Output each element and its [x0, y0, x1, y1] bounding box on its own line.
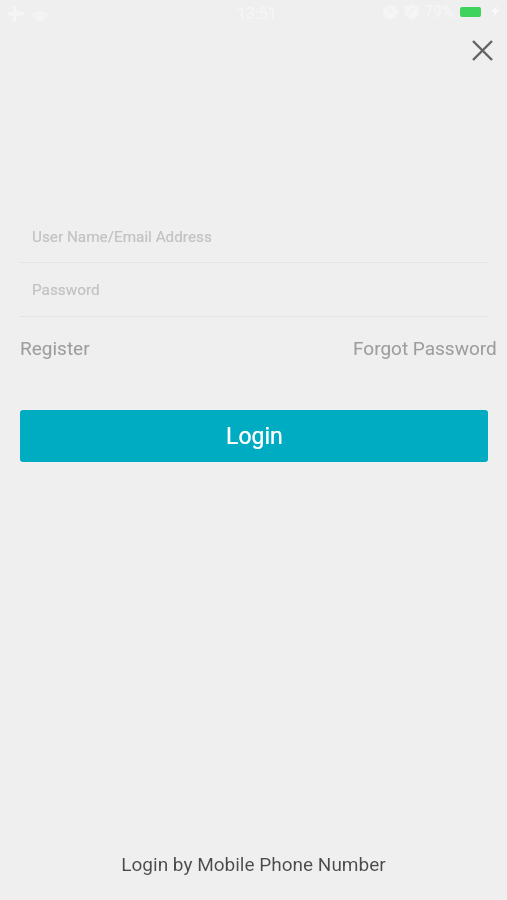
- button[interactable]: Password: [0, 268, 507, 312]
- button[interactable]: Register: [20, 331, 90, 365]
- button[interactable]: Login: [20, 410, 488, 462]
- staticText: Register: [20, 337, 90, 359]
- staticText: Login: [226, 423, 283, 450]
- staticText: Password: [32, 281, 100, 299]
- button[interactable]: Login by Mobile Phone Number: [105, 849, 402, 879]
- staticText: Login by Mobile Phone Number: [121, 853, 386, 875]
- button[interactable]: Close: [460, 28, 504, 72]
- button[interactable]: User Name/Email Address: [0, 215, 507, 259]
- button[interactable]: Forgot Password: [353, 331, 497, 365]
- staticText: User Name/Email Address: [32, 228, 212, 246]
- staticText: Forgot Password: [353, 337, 497, 359]
